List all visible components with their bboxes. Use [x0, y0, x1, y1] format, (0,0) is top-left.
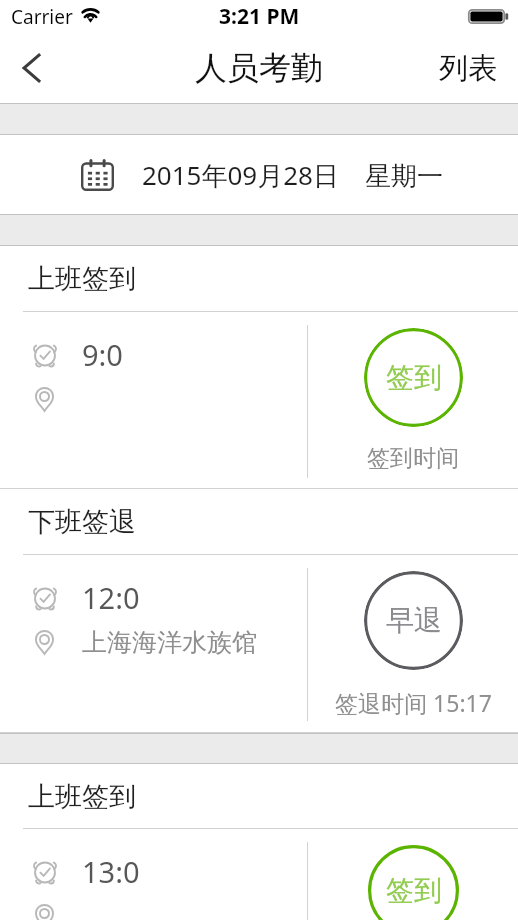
button[interactable]: 12:0 — [0, 555, 307, 733]
staticText: 上班签到 — [28, 780, 136, 814]
staticText: 签退时间 15:17 — [335, 687, 492, 718]
button[interactable]: 早退 — [364, 571, 463, 670]
staticText: 13:0 — [82, 852, 140, 891]
staticText: 人员考勤 — [195, 48, 323, 88]
button[interactable]: 列表 — [418, 33, 518, 103]
staticText: 上班签到 — [28, 262, 136, 296]
staticText: 12:0 — [82, 578, 140, 617]
staticText: 下班签退 — [28, 505, 136, 539]
button[interactable]: 签到 — [364, 845, 463, 920]
staticText: 签到 — [386, 360, 442, 395]
button[interactable]: 下班签退 — [0, 489, 518, 555]
staticText: 签到时间 — [367, 444, 459, 473]
staticText: 列表 — [439, 50, 497, 87]
staticText: 早退 — [386, 603, 442, 638]
staticText: Carrier — [11, 4, 73, 30]
staticText: 3:21 PM — [219, 2, 300, 31]
button[interactable]: 13:0 — [0, 829, 307, 920]
button[interactable]: 上班签到 — [0, 764, 518, 829]
button[interactable]: 2015年09月28日 星期一 — [0, 135, 518, 214]
button[interactable]: 签到 — [364, 328, 463, 427]
button[interactable]: 上班签到 — [0, 246, 518, 312]
staticText: 2015年09月28日 星期一 — [142, 157, 443, 193]
button[interactable]: Back — [0, 33, 62, 103]
button[interactable]: 9:0 — [0, 312, 307, 489]
staticText: 9:0 — [82, 335, 123, 374]
staticText: 签到 — [386, 873, 442, 908]
staticText: 上海海洋水族馆 — [82, 627, 257, 658]
